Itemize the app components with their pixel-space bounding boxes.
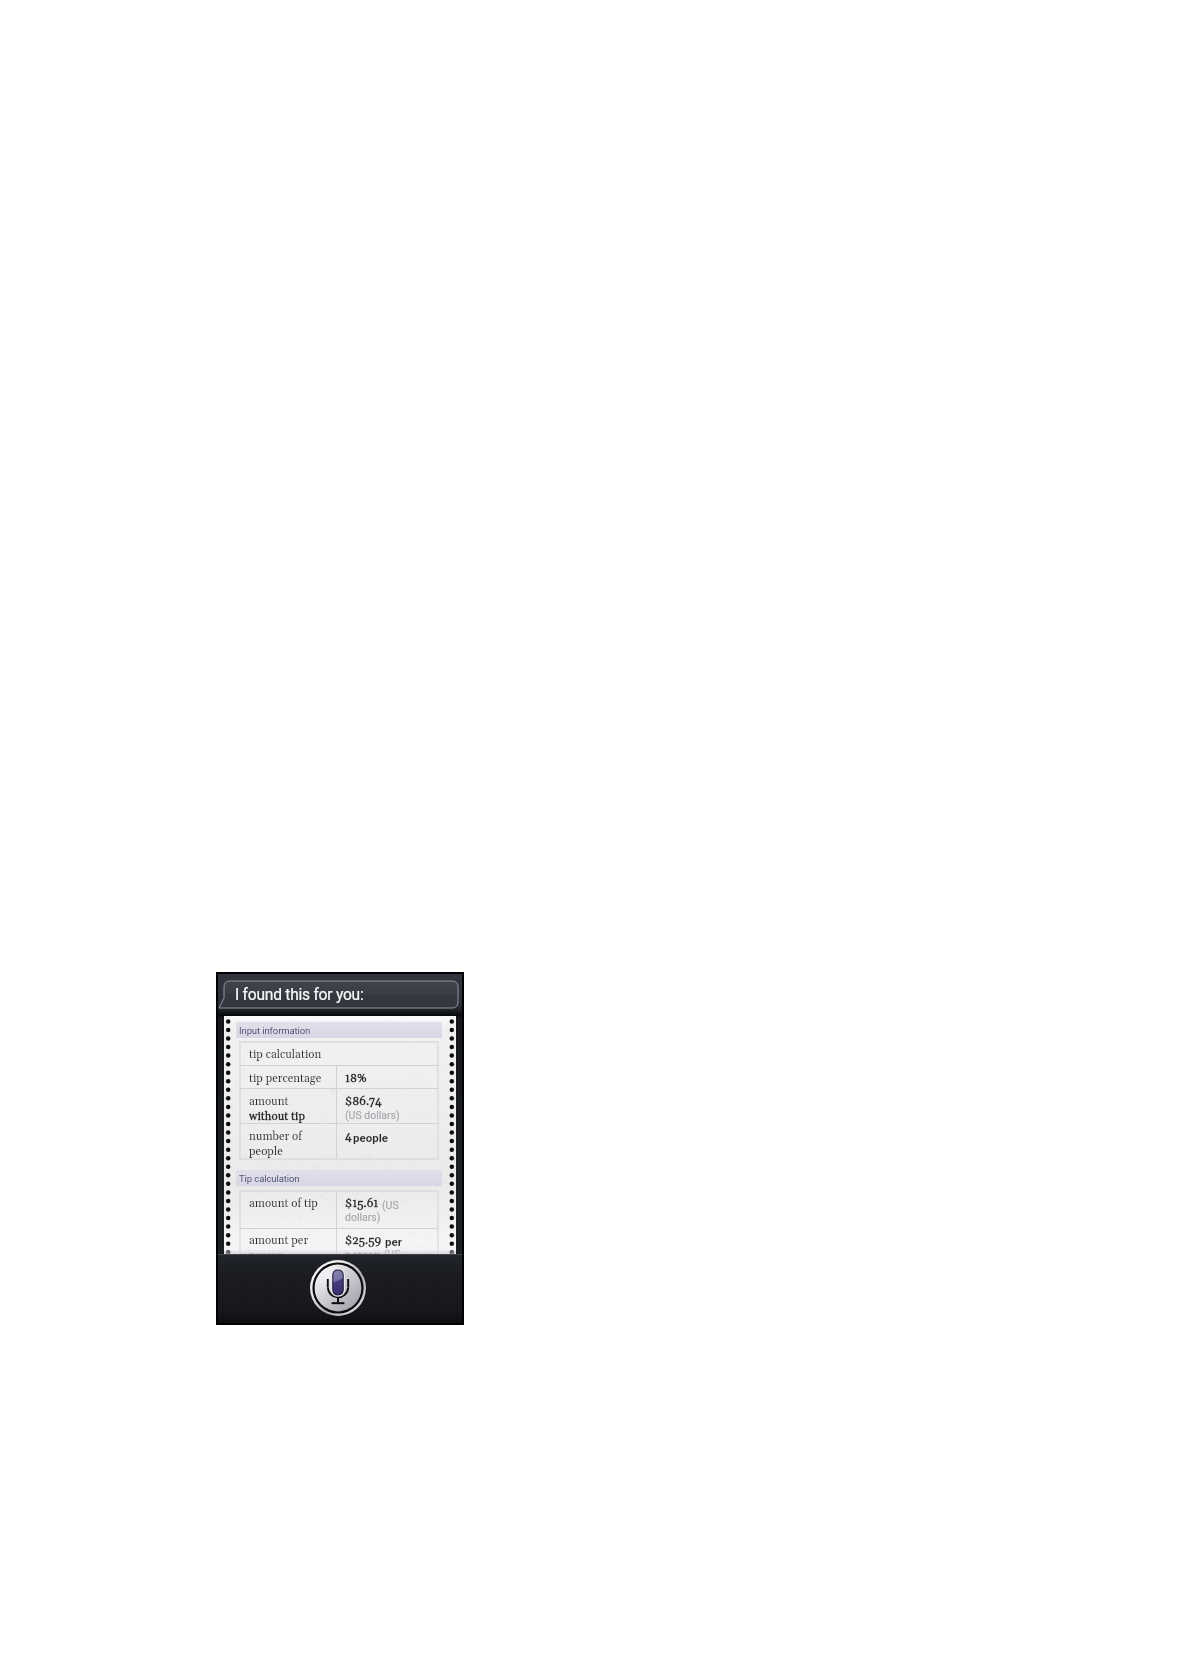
- staticText: amount per: [249, 1233, 309, 1248]
- staticText: people: [353, 1131, 388, 1144]
- staticText: people: [249, 1144, 283, 1159]
- button[interactable]: Open tip calculation result in Wolfram A…: [224, 1016, 456, 1254]
- staticText: person: [345, 1248, 381, 1254]
- staticText: (US: [384, 1248, 401, 1254]
- staticText: 4: [345, 1129, 352, 1144]
- staticText: I found this for you:: [235, 986, 364, 1004]
- staticText: $15.61: [345, 1196, 379, 1211]
- staticText: tip calculation: [249, 1047, 322, 1062]
- staticText: Input information: [239, 1025, 311, 1036]
- staticText: person: [249, 1248, 284, 1254]
- staticText: 18%: [345, 1071, 367, 1086]
- staticText: (US: [382, 1199, 399, 1211]
- staticText: per: [385, 1235, 402, 1248]
- staticText: number of: [249, 1129, 302, 1144]
- button[interactable]: Microphone: [310, 1260, 366, 1316]
- staticText: $25.59: [345, 1233, 382, 1248]
- staticText: $86.74: [345, 1094, 382, 1109]
- staticText: dollars): [345, 1211, 381, 1223]
- staticText: amount: [249, 1094, 289, 1109]
- staticText: Tip calculation: [239, 1173, 300, 1184]
- staticText: amount of tip: [249, 1196, 318, 1211]
- staticText: (US dollars): [345, 1109, 400, 1121]
- staticText: without tip: [249, 1109, 305, 1123]
- staticText: tip percentage: [249, 1071, 322, 1086]
